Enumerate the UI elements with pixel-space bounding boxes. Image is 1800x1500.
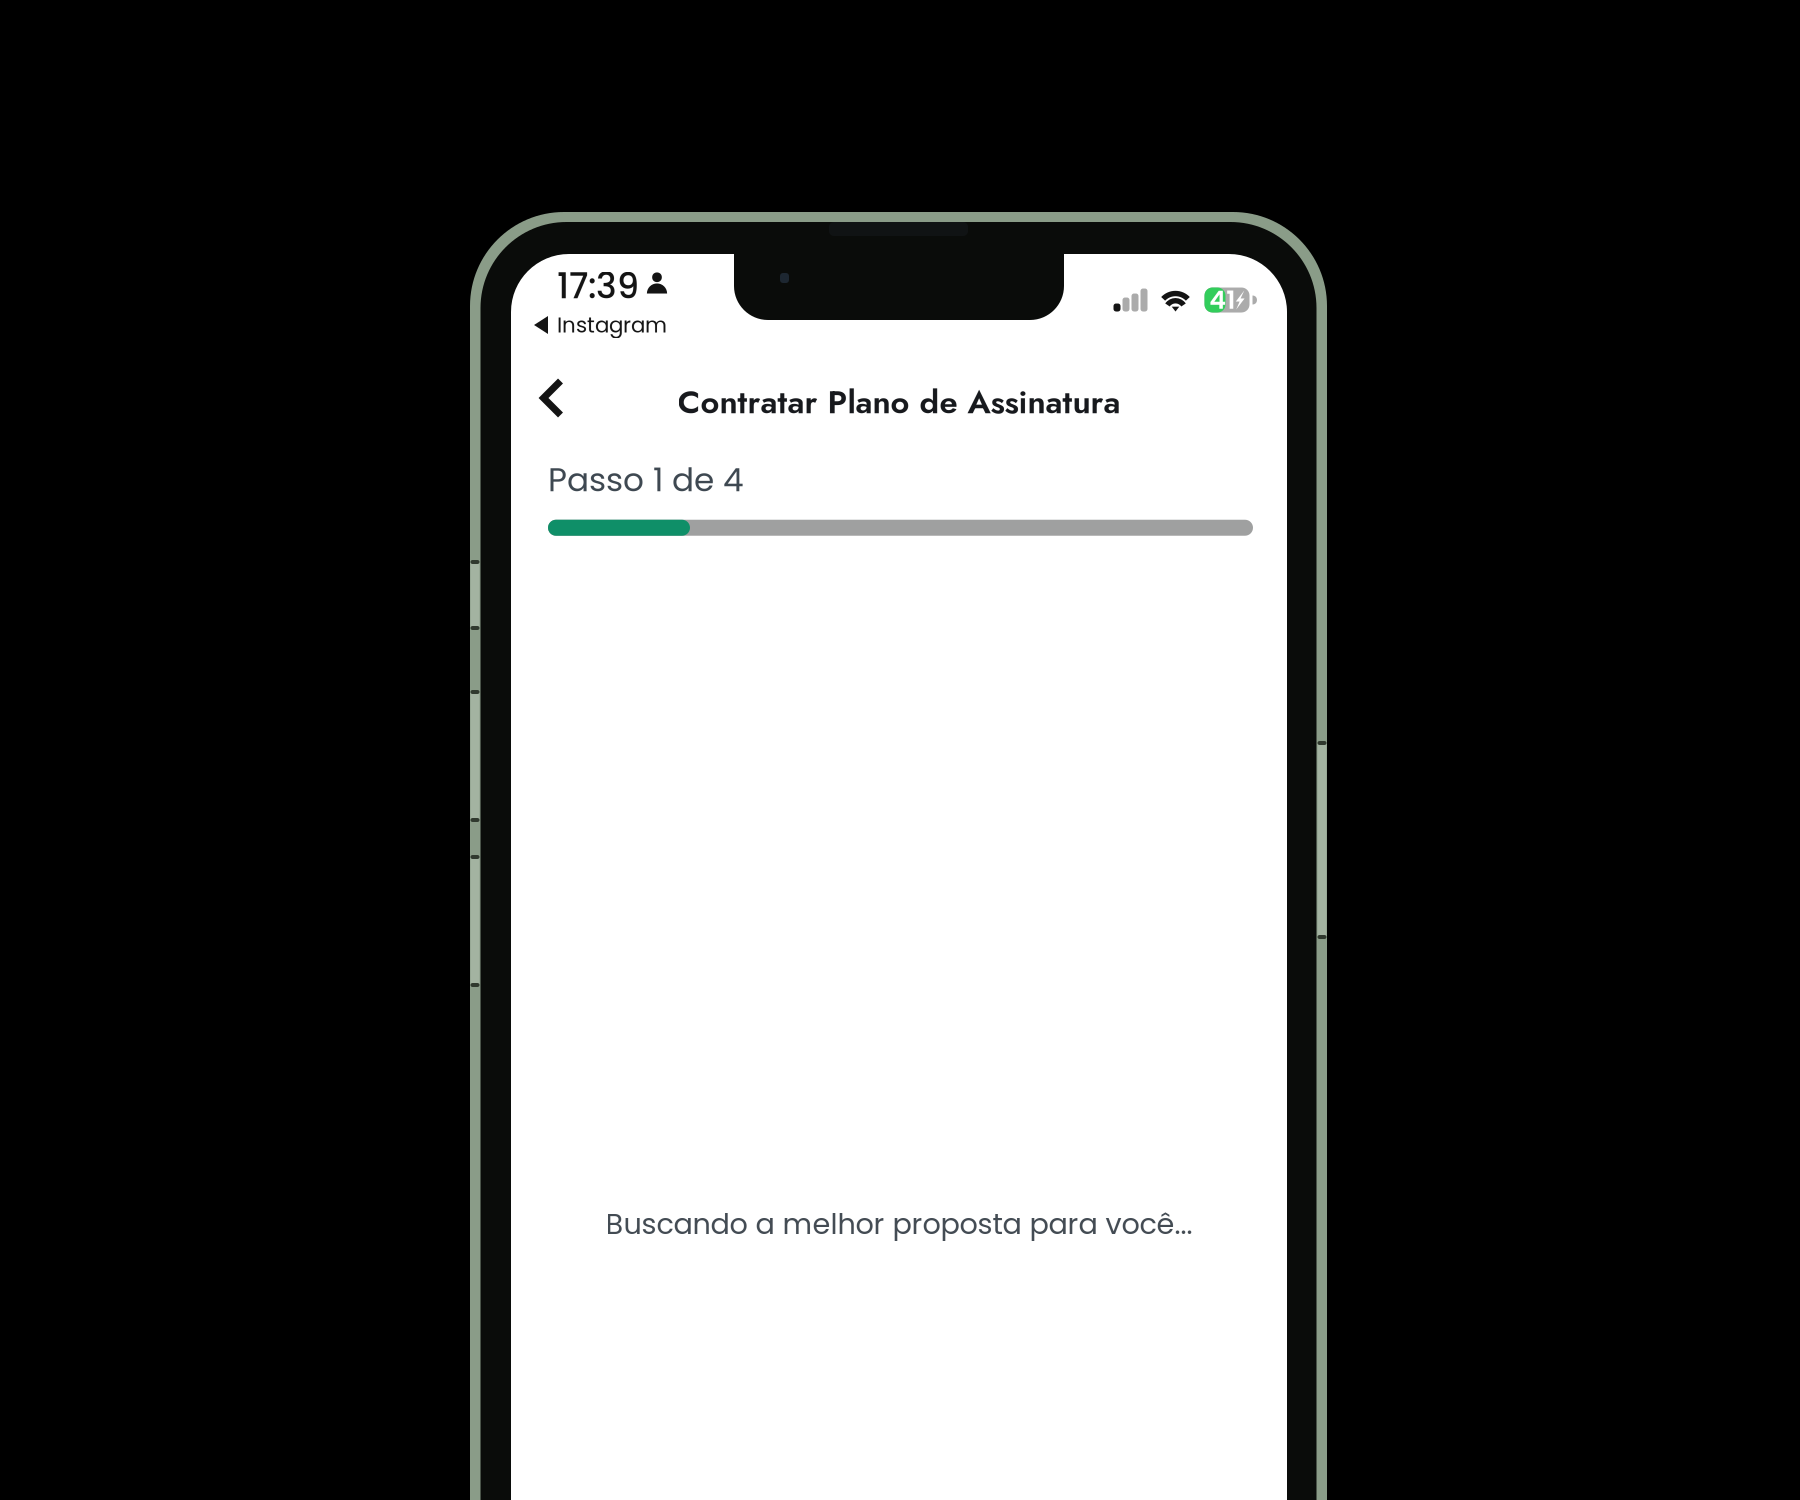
button[interactable]: Voltar — [523, 357, 581, 438]
staticText: 17:39 — [557, 262, 639, 310]
button[interactable]: Voltar para o Instagram — [534, 306, 667, 344]
staticText: 41 — [1209, 282, 1235, 318]
staticText: Passo 1 de 4 — [548, 457, 744, 503]
staticText: Contratar Plano de Assinatura — [677, 378, 1120, 426]
staticText: Instagram — [557, 310, 667, 340]
staticText: Buscando a melhor proposta para você... — [605, 1204, 1192, 1244]
